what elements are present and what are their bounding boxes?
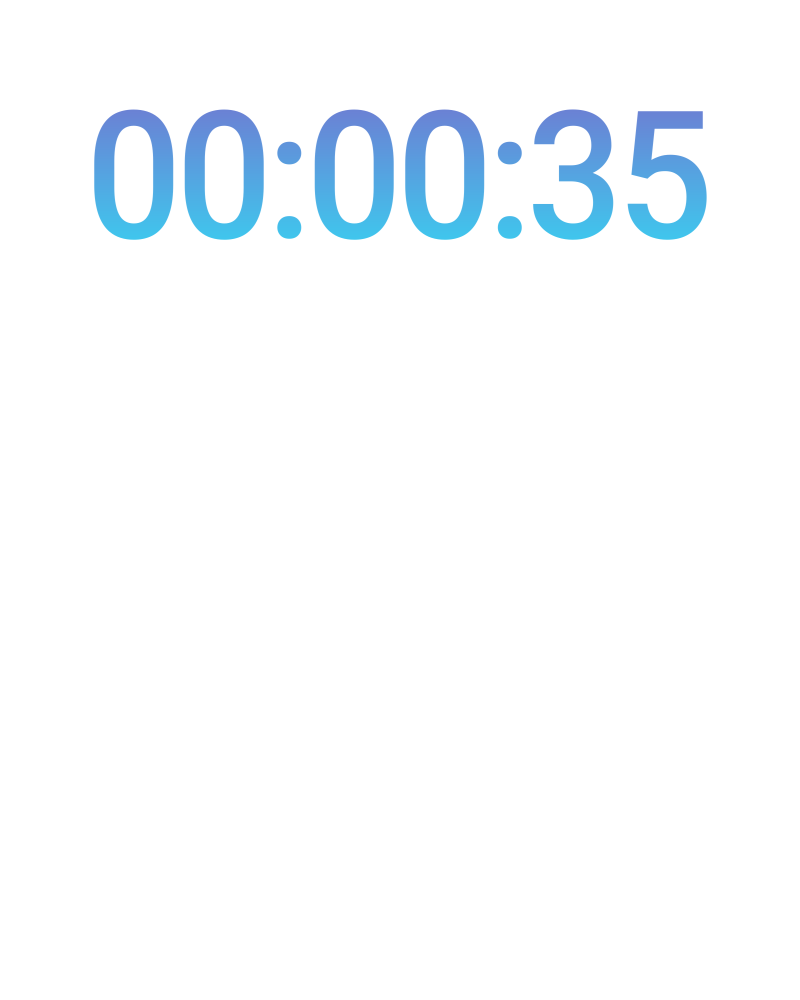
- staticText: 00:00:35: [85, 72, 713, 281]
